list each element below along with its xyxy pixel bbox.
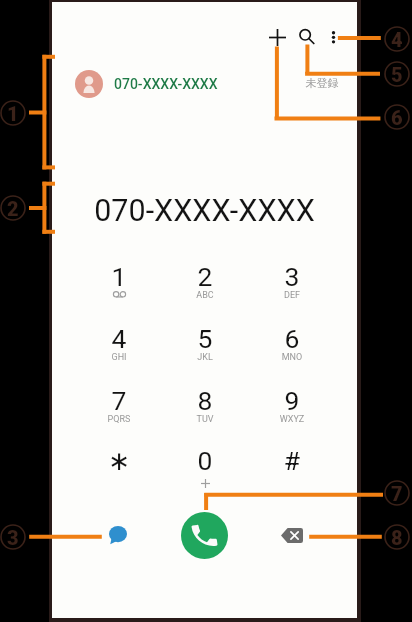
button[interactable]: More options bbox=[315, 18, 351, 54]
staticText: 未登録 bbox=[302, 76, 342, 90]
button[interactable]: 070-XXXX-XXXX bbox=[75, 67, 275, 101]
staticText: 070-XXXX-XXXX bbox=[114, 76, 218, 92]
staticText: 4 bbox=[84, 323, 154, 354]
button[interactable]: 5 bbox=[170, 315, 240, 367]
staticText: 2 bbox=[170, 261, 240, 292]
staticText: 7 bbox=[84, 385, 154, 416]
staticText: 070-XXXX-XXXX bbox=[52, 193, 357, 229]
button[interactable]: # bbox=[257, 437, 327, 489]
staticText: 9 bbox=[257, 385, 327, 416]
button[interactable]: Call bbox=[181, 512, 228, 559]
button[interactable]: 6 bbox=[257, 315, 327, 367]
staticText: 3 bbox=[257, 261, 327, 292]
staticText: 6 bbox=[257, 323, 327, 354]
staticText: 3 bbox=[7, 526, 19, 549]
staticText: JKL bbox=[170, 352, 240, 363]
staticText: 6 bbox=[391, 106, 403, 129]
button[interactable]: 9 bbox=[257, 377, 327, 429]
staticText: 1 bbox=[7, 102, 19, 125]
button[interactable]: Search bbox=[288, 18, 324, 54]
button[interactable]: 2 bbox=[170, 253, 240, 305]
staticText: WXYZ bbox=[257, 414, 327, 425]
staticText: 1 bbox=[84, 261, 154, 292]
staticText: MNO bbox=[257, 352, 327, 363]
button[interactable]: 8 bbox=[170, 377, 240, 429]
button[interactable]: Backspace bbox=[270, 514, 313, 557]
staticText: 0 bbox=[170, 445, 240, 476]
staticText: 5 bbox=[170, 323, 240, 354]
button[interactable]: 0 bbox=[170, 437, 240, 489]
staticText: TUV bbox=[170, 414, 240, 425]
staticText: ∗ bbox=[84, 445, 154, 476]
button[interactable]: Send message bbox=[96, 513, 140, 557]
button[interactable]: 7 bbox=[84, 377, 154, 429]
staticText: # bbox=[257, 445, 327, 476]
button[interactable]: 1 bbox=[84, 253, 154, 305]
staticText: ABC bbox=[170, 290, 240, 301]
staticText: DEF bbox=[257, 290, 327, 301]
staticText: 2 bbox=[7, 197, 19, 220]
staticText: 4 bbox=[391, 28, 403, 51]
staticText: GHI bbox=[84, 352, 154, 363]
staticText: 5 bbox=[391, 63, 403, 86]
staticText: 8 bbox=[170, 385, 240, 416]
button[interactable]: ∗ bbox=[84, 437, 154, 489]
staticText: 8 bbox=[391, 526, 403, 549]
button[interactable]: Add to contacts bbox=[259, 19, 295, 55]
button[interactable]: 4 bbox=[84, 315, 154, 367]
button[interactable]: 3 bbox=[257, 253, 327, 305]
staticText: PQRS bbox=[84, 414, 154, 425]
staticText: 7 bbox=[391, 482, 403, 505]
